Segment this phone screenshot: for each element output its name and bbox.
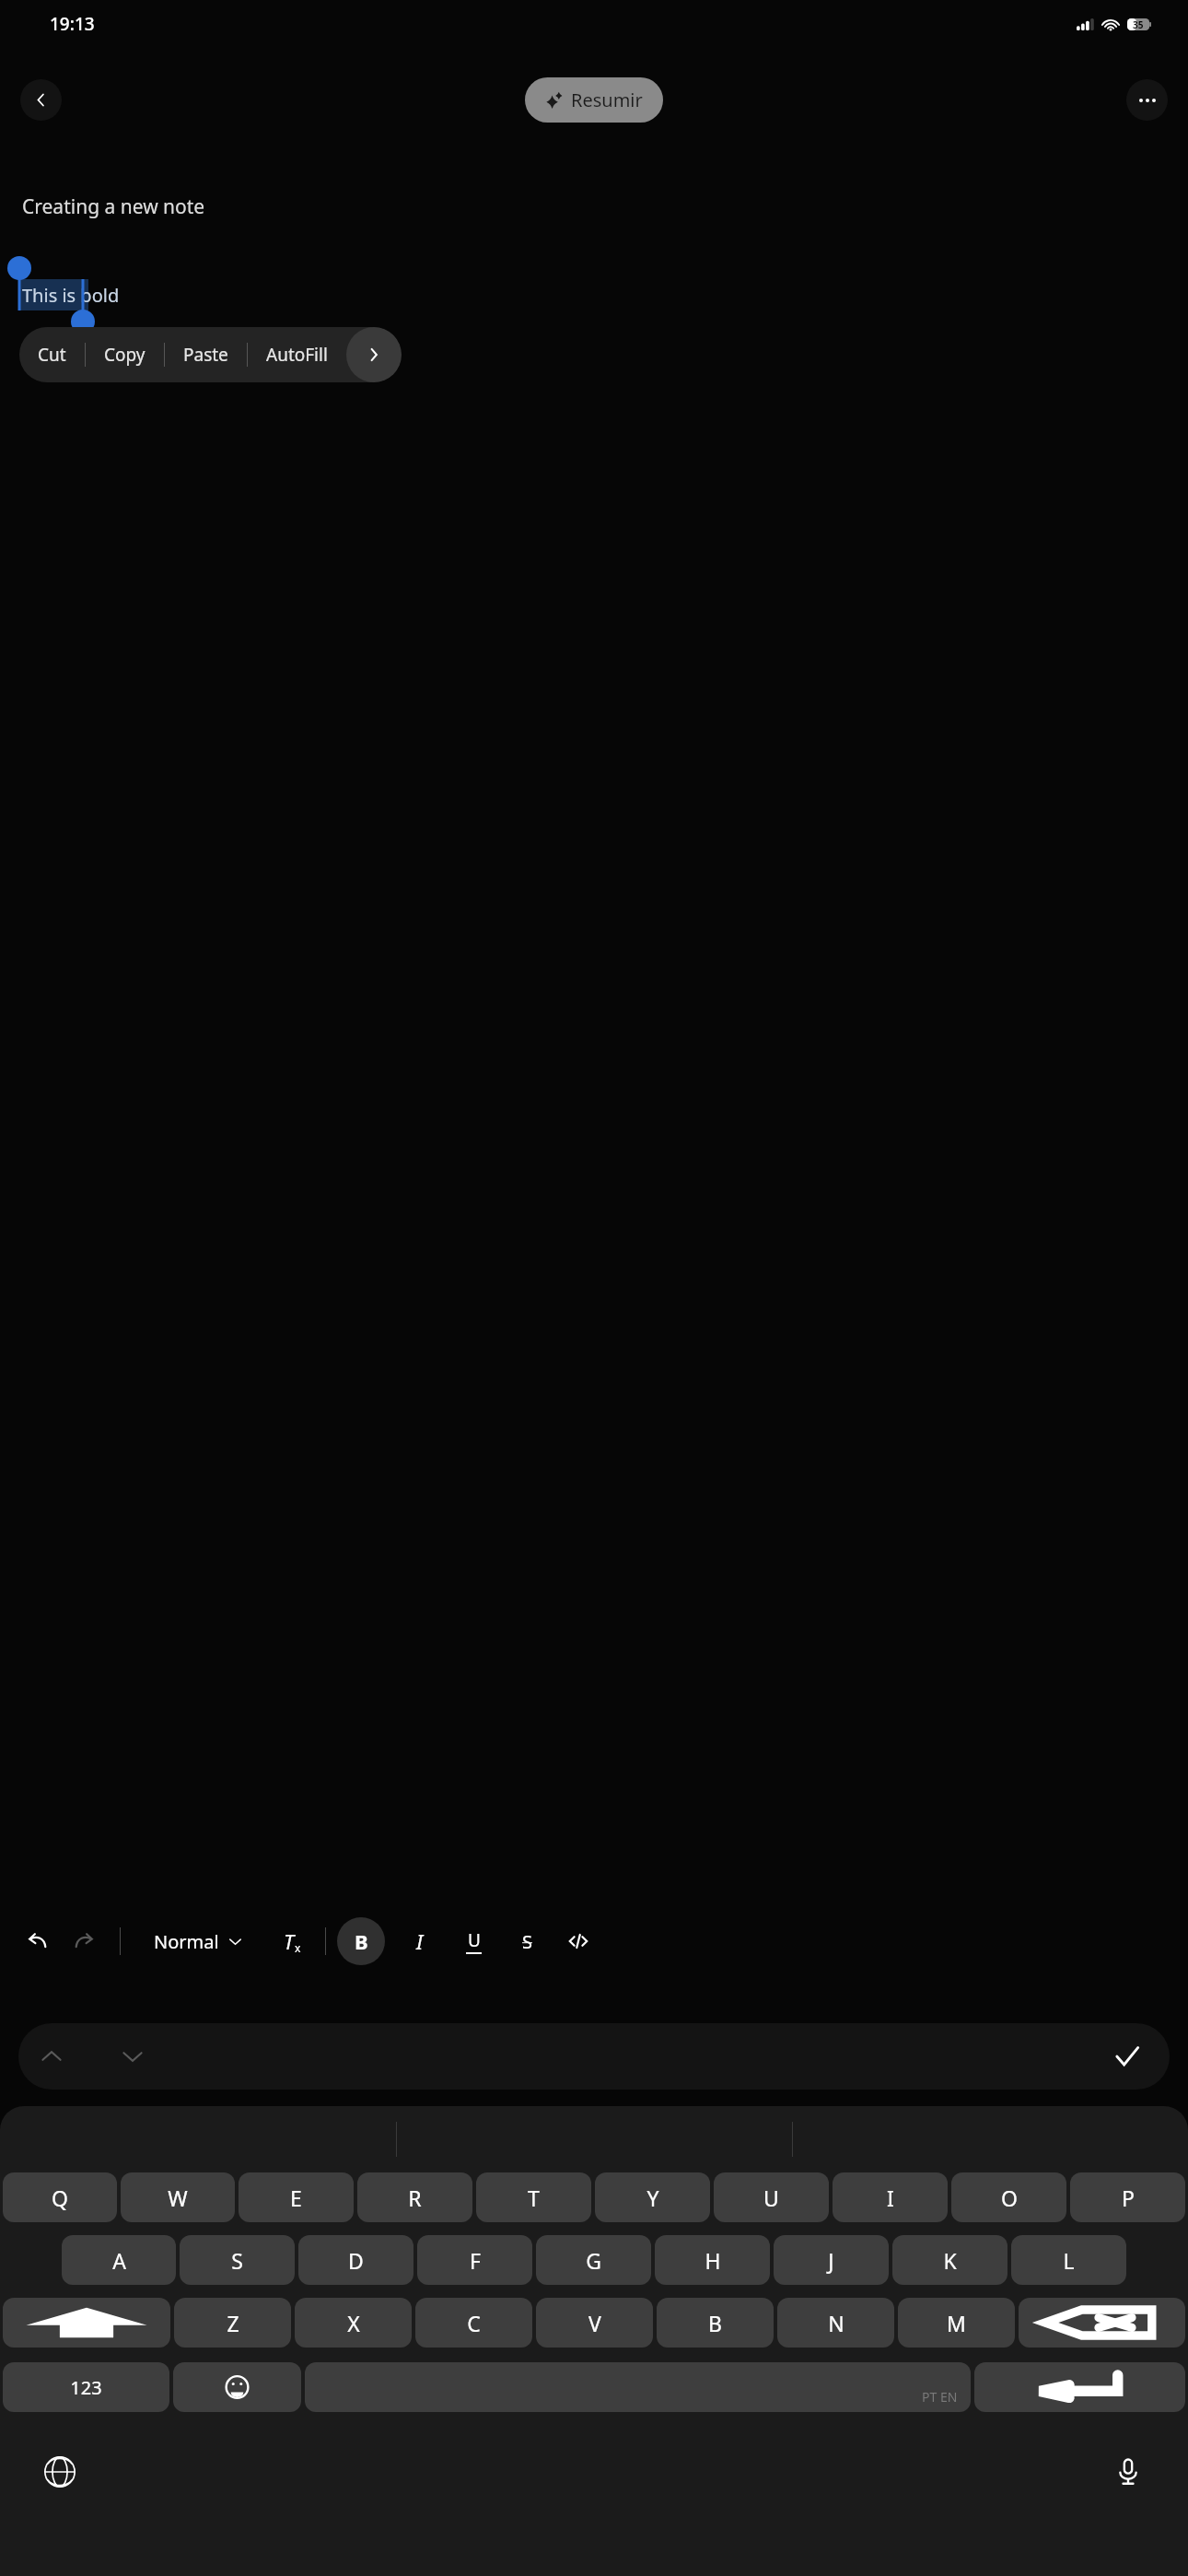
button[interactable]: More (346, 327, 402, 382)
staticText: S (231, 2246, 243, 2275)
staticText: N (828, 2309, 844, 2337)
button[interactable]: D (298, 2235, 413, 2285)
button[interactable]: Voice input (1101, 2445, 1155, 2499)
staticText: T (284, 1927, 295, 1955)
staticText: Cut (38, 343, 66, 367)
button[interactable]: I (400, 1921, 440, 1961)
staticText: J (828, 2246, 834, 2275)
staticText: U (468, 1928, 481, 1952)
button[interactable]: V (536, 2298, 653, 2348)
staticText: Q (52, 2184, 68, 2212)
staticText: 123 (70, 2375, 102, 2400)
staticText: B (708, 2309, 722, 2337)
staticText: X (347, 2309, 360, 2337)
button[interactable]: W (121, 2172, 235, 2222)
staticText: R (408, 2184, 422, 2212)
staticText: H (705, 2246, 721, 2275)
button[interactable]: Z (174, 2298, 291, 2348)
button[interactable]: AutoFill (248, 329, 346, 381)
button[interactable]: Change language (33, 2445, 87, 2499)
button[interactable]: Shift (3, 2298, 170, 2348)
staticText: U (763, 2184, 779, 2212)
staticText: I (887, 2184, 894, 2212)
staticText: G (586, 2246, 601, 2275)
button[interactable]: Undo (15, 1918, 61, 1964)
staticText: Paste (183, 343, 228, 367)
staticText: Copy (104, 343, 146, 367)
staticText: This is bold (22, 283, 120, 308)
button[interactable]: Space (305, 2362, 971, 2412)
button[interactable]: Resumir (525, 77, 663, 123)
button[interactable]: G (536, 2235, 651, 2285)
button[interactable]: Clear format (272, 1921, 312, 1961)
staticText: 19:13 (50, 12, 95, 36)
button[interactable]: M (898, 2298, 1015, 2348)
button[interactable]: U (714, 2172, 829, 2222)
button[interactable]: Strikethrough (507, 1921, 547, 1961)
staticText: x (295, 1940, 301, 1955)
button[interactable]: B (657, 2298, 774, 2348)
button[interactable]: B (337, 1917, 385, 1965)
button[interactable]: Normal (148, 1922, 248, 1961)
staticText: B (355, 1927, 368, 1955)
button[interactable]: 123 (3, 2362, 169, 2412)
button[interactable]: Q (3, 2172, 117, 2222)
button[interactable]: I (833, 2172, 948, 2222)
button[interactable]: R (357, 2172, 472, 2222)
button[interactable]: X (295, 2298, 412, 2348)
button[interactable]: E (239, 2172, 354, 2222)
staticText: P (1122, 2184, 1135, 2212)
button[interactable]: Emoji (173, 2362, 301, 2412)
button[interactable]: Copy (86, 329, 164, 381)
button[interactable]: Underline (453, 1921, 494, 1961)
staticText: A (112, 2246, 126, 2275)
staticText: L (1063, 2246, 1075, 2275)
button[interactable]: A (62, 2235, 176, 2285)
button[interactable]: S (180, 2235, 295, 2285)
staticText: Creating a new note (22, 193, 205, 220)
button[interactable]: H (655, 2235, 770, 2285)
button[interactable]: Y (595, 2172, 710, 2222)
button[interactable]: Redo (61, 1918, 107, 1964)
staticText: Z (227, 2309, 239, 2337)
staticText: M (947, 2309, 966, 2337)
button[interactable]: Backspace (1019, 2298, 1185, 2348)
staticText: K (943, 2246, 957, 2275)
button[interactable]: Paste (165, 329, 247, 381)
staticText: T (528, 2184, 540, 2212)
button[interactable]: P (1070, 2172, 1185, 2222)
button[interactable]: L (1011, 2235, 1126, 2285)
button[interactable]: Confirm (1094, 2023, 1160, 2090)
button[interactable]: More options (1126, 79, 1168, 121)
button[interactable]: Next (99, 2023, 166, 2090)
staticText: I (416, 1927, 424, 1955)
button[interactable]: T (476, 2172, 591, 2222)
button[interactable]: Cut (19, 329, 85, 381)
staticText: S (522, 1929, 532, 1954)
button[interactable]: K (892, 2235, 1007, 2285)
staticText: D (348, 2246, 364, 2275)
button[interactable]: Previous (18, 2023, 85, 2090)
staticText: O (1001, 2184, 1018, 2212)
staticText: V (588, 2309, 601, 2337)
button[interactable]: O (951, 2172, 1066, 2222)
staticText: W (168, 2184, 188, 2212)
button[interactable]: F (417, 2235, 532, 2285)
button[interactable]: Back (20, 79, 62, 121)
button[interactable]: N (777, 2298, 894, 2348)
staticText: E (290, 2184, 302, 2212)
staticText: F (470, 2246, 481, 2275)
button[interactable]: C (415, 2298, 532, 2348)
staticText: Y (646, 2184, 659, 2212)
staticText: AutoFill (266, 343, 328, 367)
staticText: PT EN (922, 2388, 958, 2406)
button[interactable]: Enter (974, 2362, 1185, 2412)
staticText: C (467, 2309, 481, 2337)
button[interactable]: Code (558, 1921, 599, 1961)
staticText: Normal (154, 1929, 219, 1954)
button[interactable]: J (774, 2235, 889, 2285)
staticText: Resumir (571, 88, 643, 112)
staticText: 35 (1133, 18, 1144, 30)
